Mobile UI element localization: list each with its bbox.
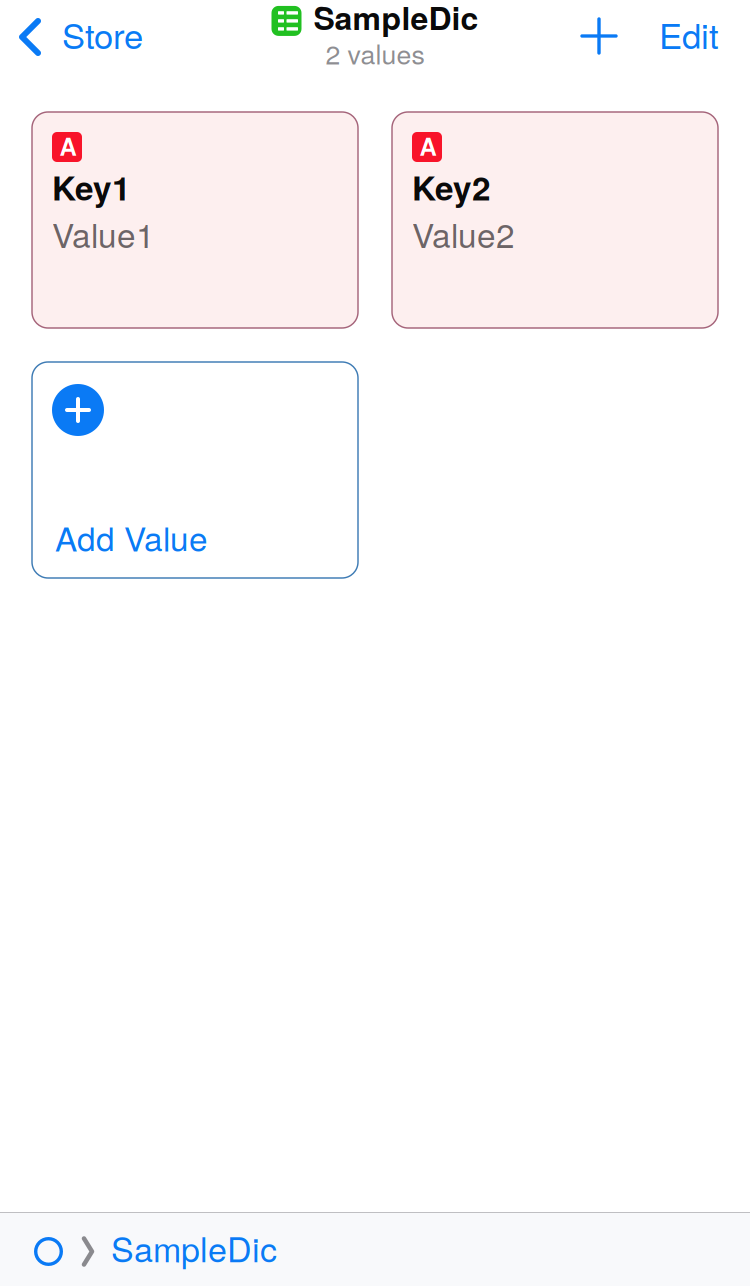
button[interactable]: Edit [659, 3, 719, 73]
staticText: 2 values [325, 34, 424, 72]
staticText: A [59, 129, 76, 163]
staticText: Key2 [412, 163, 491, 211]
button[interactable]: Store [0, 3, 155, 73]
staticText: A [419, 129, 436, 163]
button[interactable]: Add Value [32, 362, 358, 578]
staticText: Key1 [52, 163, 131, 211]
button[interactable]: SampleDic [113, 1225, 279, 1274]
button[interactable]: Root store [34, 1235, 63, 1264]
staticText: Edit [659, 9, 719, 59]
staticText: Store [62, 9, 143, 59]
staticText: Value1 [52, 210, 155, 257]
button[interactable]: Key1, Value1 [32, 112, 358, 328]
staticText: Add Value [55, 513, 208, 561]
button[interactable]: Add value [570, 10, 624, 66]
staticText: SampleDic [111, 1223, 277, 1272]
button[interactable]: Key2, Value2 [392, 112, 718, 328]
staticText: Value2 [412, 210, 515, 257]
staticText: SampleDic [313, 0, 478, 40]
